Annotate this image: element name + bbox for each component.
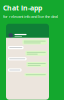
staticText: for relevant info and live the deal (3, 14, 58, 19)
staticText: Chat in-app (3, 3, 42, 12)
